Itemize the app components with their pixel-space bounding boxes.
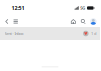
- button[interactable]: Menu: [12, 16, 19, 27]
- staticText: 12:51: [11, 4, 24, 12]
- button[interactable]: Account: [90, 16, 97, 27]
- staticText: Sent · Inbox: [4, 31, 23, 36]
- button[interactable]: Search: [80, 16, 87, 27]
- button[interactable]: Back: [3, 16, 10, 27]
- staticText: 5G: [80, 5, 85, 11]
- staticText: 1 d: [91, 31, 96, 36]
- button[interactable]: Home: [70, 16, 77, 27]
- button[interactable]: Favourite: [83, 31, 89, 36]
